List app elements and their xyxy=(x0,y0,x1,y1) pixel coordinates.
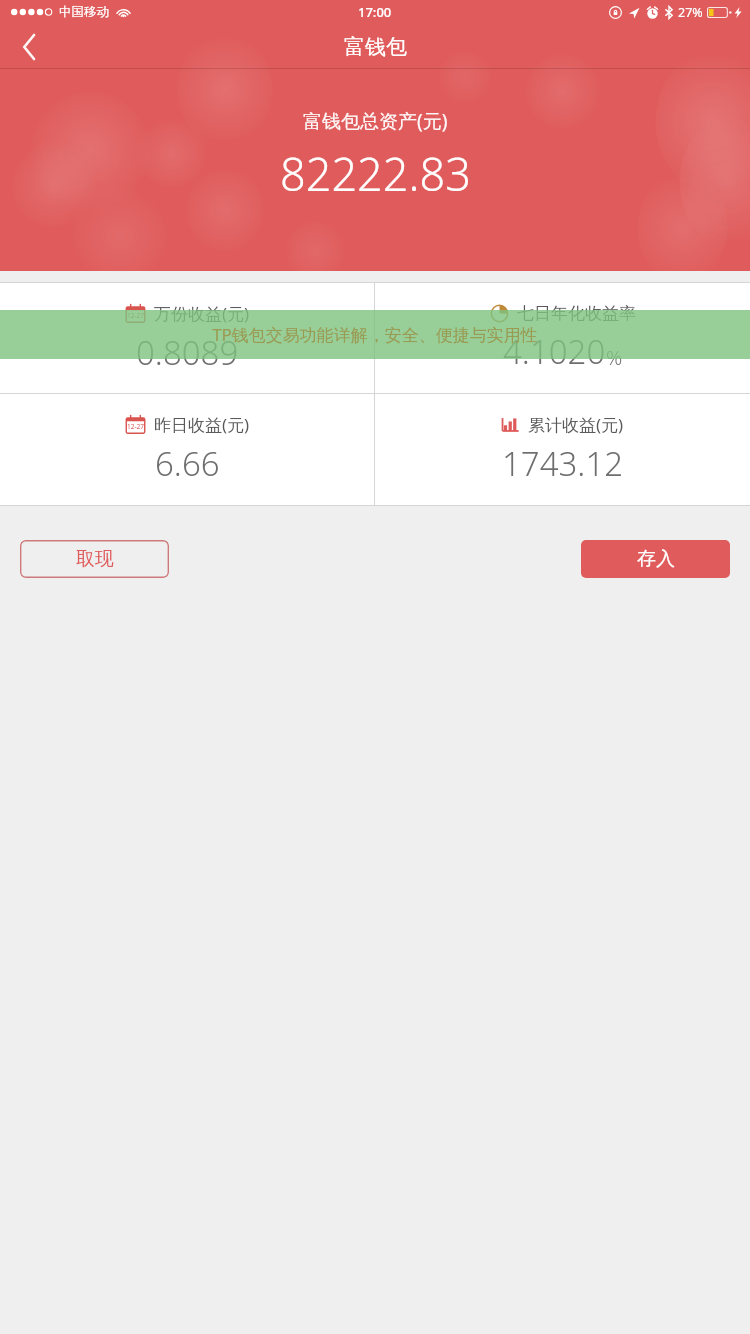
button[interactable]: 12-27 xyxy=(0,394,374,505)
button[interactable]: 累计收益(元) xyxy=(375,394,750,505)
staticText: 0.8089 xyxy=(136,330,239,375)
staticText: 12-27 xyxy=(127,422,144,431)
button[interactable]: 取现 xyxy=(20,540,169,578)
button[interactable]: 12-27 xyxy=(0,283,374,393)
staticText: TP钱包交易功能详解，安全、便捷与实用性 xyxy=(212,323,538,346)
staticText: 富钱包 xyxy=(344,34,407,60)
staticText: 12-27 xyxy=(127,311,144,320)
staticText: 富钱包总资产(元) xyxy=(303,108,448,134)
staticText: 17:00 xyxy=(358,3,392,21)
staticText: 1743.12 xyxy=(502,441,624,486)
staticText: 七日年化收益率 xyxy=(517,303,636,324)
staticText: 6.66 xyxy=(155,441,220,486)
button[interactable]: 七日年化收益率 xyxy=(375,283,750,393)
staticText: 中国移动 xyxy=(59,4,109,20)
staticText: % xyxy=(606,344,623,371)
staticText: 27% xyxy=(678,4,703,21)
button[interactable]: 返回 xyxy=(0,24,58,69)
staticText: 存入 xyxy=(637,547,675,571)
staticText: 累计收益(元) xyxy=(528,413,624,436)
staticText: 4.1020 xyxy=(503,329,606,374)
button[interactable]: 存入 xyxy=(581,540,730,578)
staticText: 取现 xyxy=(76,547,114,571)
staticText: 昨日收益(元) xyxy=(154,413,250,436)
staticText: 82222.83 xyxy=(280,143,471,204)
staticText: 万份收益(元) xyxy=(154,302,250,325)
